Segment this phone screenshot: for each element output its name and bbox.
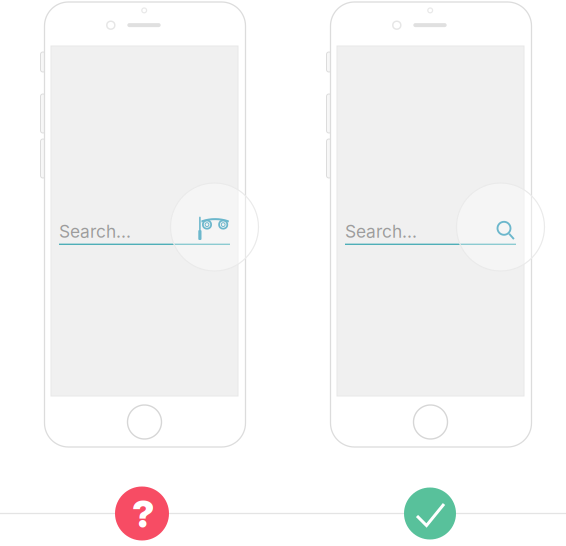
button[interactable]: Incorrect example — [0, 0, 566, 546]
staticText: ? — [132, 491, 155, 537]
staticText: Search... — [59, 221, 131, 242]
button[interactable]: Correct example — [0, 0, 566, 546]
staticText: Search... — [345, 221, 417, 242]
